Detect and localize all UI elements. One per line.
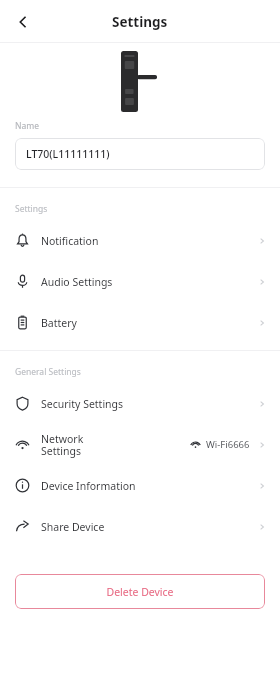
- staticText: General Settings: [15, 366, 81, 378]
- staticText: Battery: [41, 316, 77, 330]
- button[interactable]: Network Settings: [0, 424, 280, 465]
- staticText: Settings: [112, 13, 168, 31]
- button[interactable]: Notification: [0, 220, 280, 261]
- button[interactable]: Audio Settings: [0, 261, 280, 302]
- button[interactable]: Back: [6, 5, 40, 39]
- staticText: Settings: [15, 203, 48, 215]
- staticText: Name: [15, 120, 39, 132]
- button[interactable]: Security Settings: [0, 383, 280, 424]
- button[interactable]: Delete Device: [15, 574, 265, 609]
- staticText: Wi-Fi6666: [206, 438, 250, 451]
- staticText: LT70(L11111111): [26, 147, 110, 161]
- button[interactable]: LT70(L11111111): [15, 138, 265, 170]
- staticText: Delete Device: [106, 585, 174, 599]
- staticText: Audio Settings: [41, 275, 113, 289]
- staticText: Security Settings: [41, 397, 124, 411]
- staticText: Network Settings: [41, 432, 84, 458]
- button[interactable]: Battery: [0, 302, 280, 343]
- button[interactable]: Share Device: [0, 506, 280, 547]
- button[interactable]: Device Information: [0, 465, 280, 506]
- staticText: Device Information: [41, 479, 136, 493]
- staticText: Share Device: [41, 520, 105, 534]
- staticText: Notification: [41, 234, 99, 248]
